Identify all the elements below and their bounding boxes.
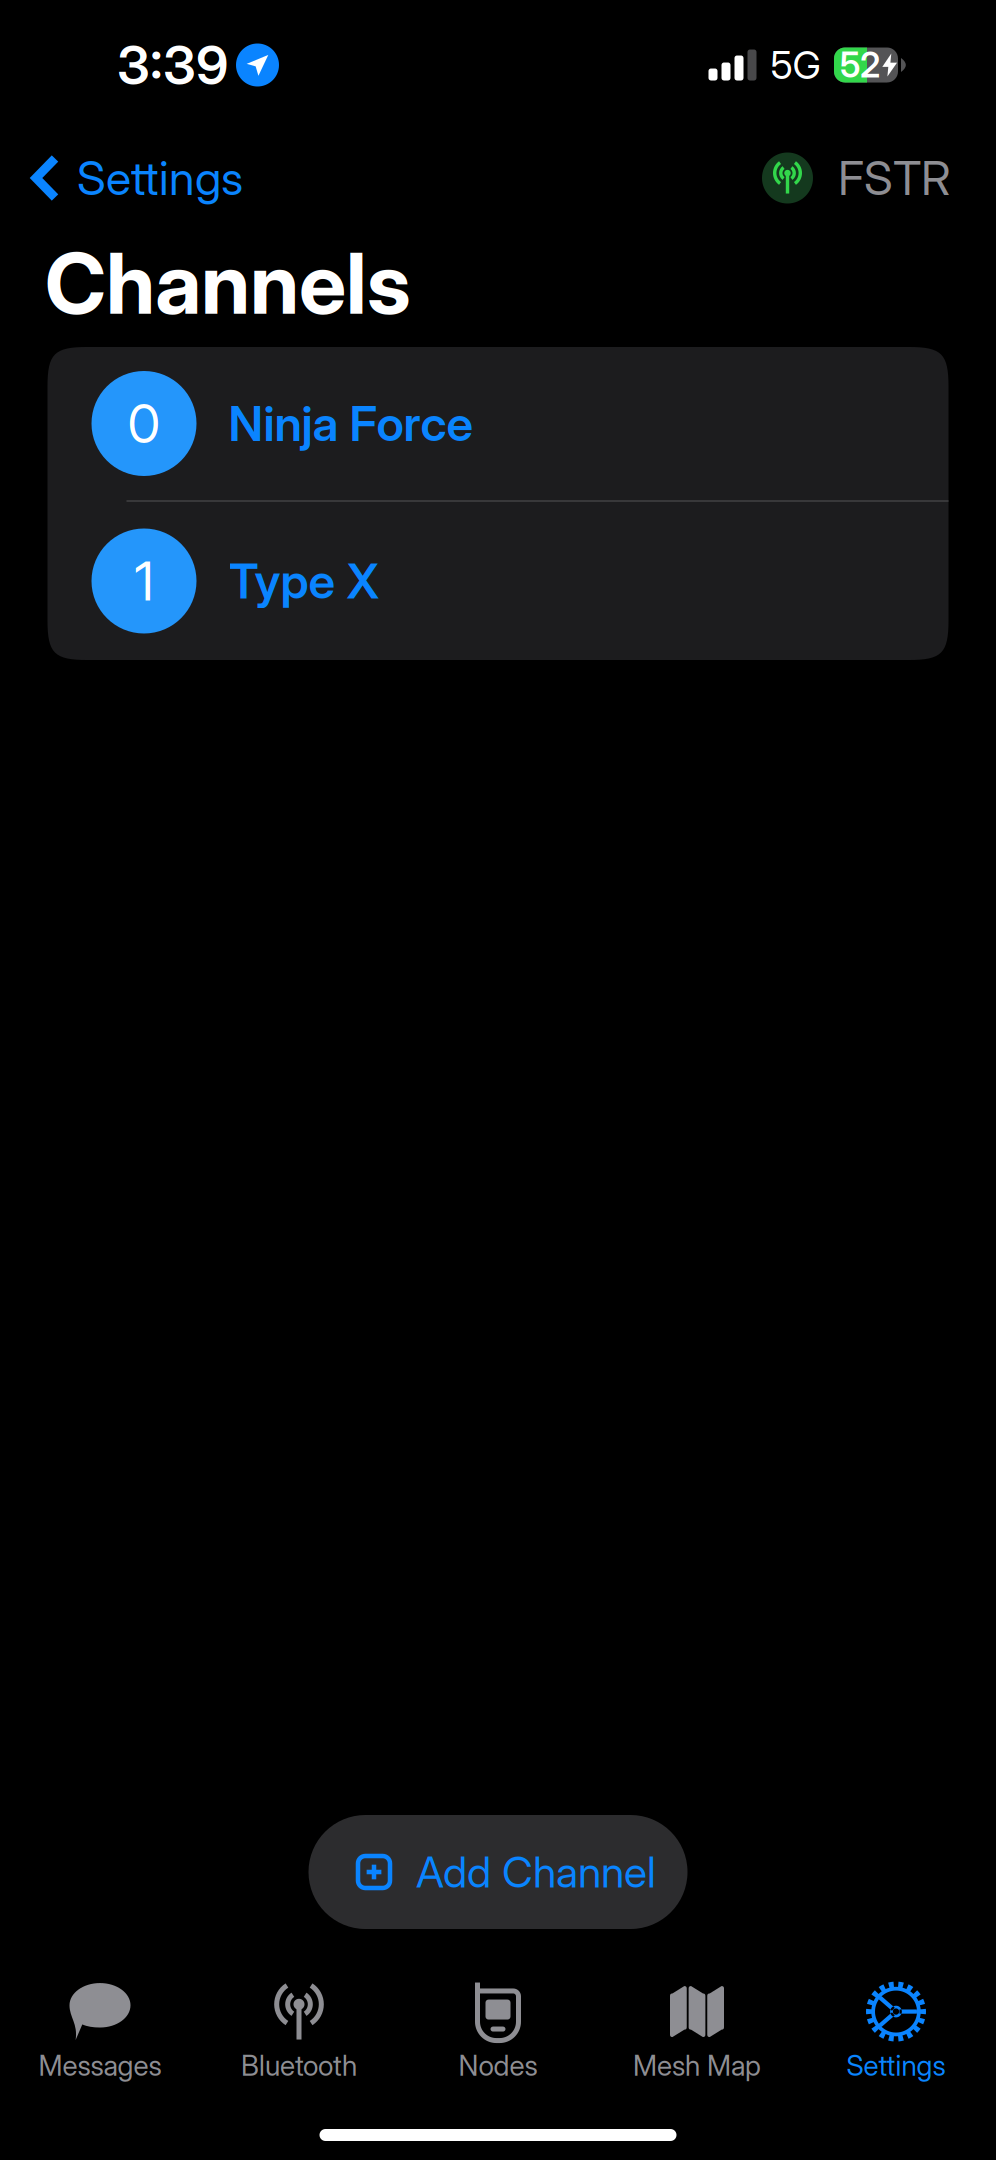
button[interactable]: Bluetooth (199, 1972, 398, 2092)
staticText: Messages (38, 2049, 161, 2082)
staticText: Nodes (458, 2049, 537, 2082)
staticText: Add Channel (416, 1846, 656, 1898)
button[interactable]: Add Channel (308, 1815, 687, 1929)
staticText: Settings (77, 150, 243, 206)
staticText: Mesh Map (633, 2049, 761, 2082)
staticText: Settings (846, 2049, 945, 2082)
staticText: 3:39 (117, 33, 228, 97)
button[interactable]: FSTR (738, 130, 996, 226)
button[interactable]: Messages (0, 1972, 199, 2092)
button[interactable]: Settings (796, 1972, 995, 2092)
staticText: 1 (134, 549, 153, 613)
staticText: 5G (770, 42, 820, 88)
staticText: Channels (45, 232, 411, 334)
staticText: 0 (127, 391, 160, 456)
staticText: FSTR (838, 150, 951, 206)
button[interactable]: 0 (47, 347, 948, 500)
button[interactable]: 1 (47, 502, 948, 660)
button[interactable]: Mesh Map (597, 1972, 796, 2092)
staticText: Bluetooth (241, 2049, 357, 2082)
button[interactable]: Settings (0, 130, 267, 226)
staticText: 52 (840, 44, 880, 86)
staticText: Type X (228, 552, 379, 610)
staticText: Ninja Force (228, 394, 473, 453)
button[interactable]: Nodes (398, 1972, 597, 2092)
